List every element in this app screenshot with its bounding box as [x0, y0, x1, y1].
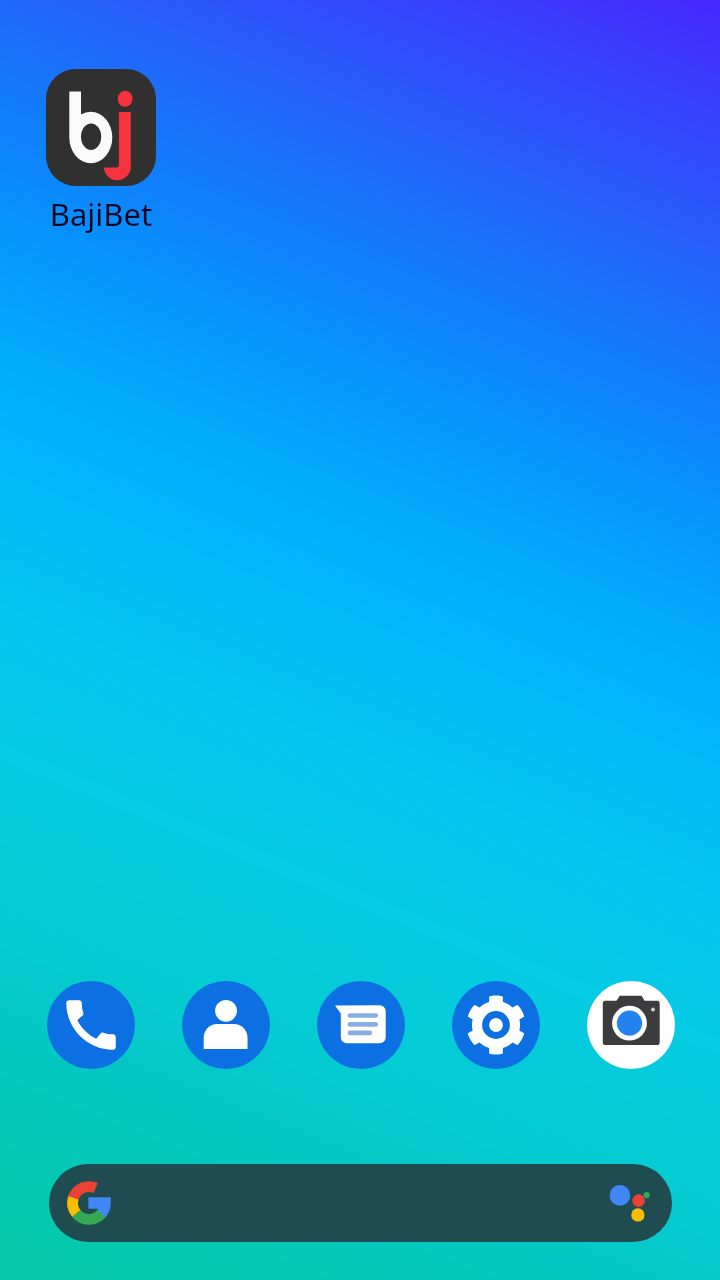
- staticText: BajiBet: [46, 193, 156, 235]
- button[interactable]: Google search: [49, 1164, 672, 1242]
- button[interactable]: BajiBet: [46, 69, 156, 235]
- button[interactable]: Phone: [47, 981, 135, 1069]
- button[interactable]: Camera: [587, 981, 675, 1069]
- button[interactable]: Messages: [317, 981, 405, 1069]
- button[interactable]: Settings: [452, 981, 540, 1069]
- button[interactable]: Contacts: [182, 981, 270, 1069]
